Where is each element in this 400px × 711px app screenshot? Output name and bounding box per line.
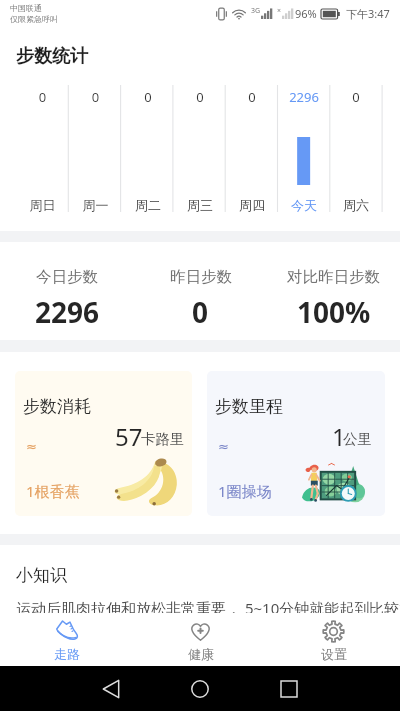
staticText: 运动后肌肉拉伸和放松非常重要， 5~10分钟就能起到比较好的效果。 <box>16 598 400 639</box>
staticText: 对比昨日步数 <box>287 267 380 287</box>
staticText: 周四 <box>226 197 278 213</box>
staticText: 2296 <box>35 293 100 331</box>
staticText: 周六 <box>330 197 382 213</box>
staticText: 57 <box>115 420 143 453</box>
staticText: 周一 <box>69 197 122 213</box>
staticText: 设置 <box>321 646 347 662</box>
staticText: ≈ <box>26 439 37 454</box>
staticText: 步数消耗 <box>23 396 91 417</box>
button[interactable]: 走路 <box>0 613 134 666</box>
staticText: 中国联通 <box>10 3 42 13</box>
staticText: 0 <box>174 88 226 106</box>
staticText: 3G <box>251 6 261 16</box>
button[interactable]: 昨日步数 <box>134 242 267 340</box>
button[interactable]: 步数消耗 <box>15 371 192 516</box>
staticText: 下午3:47 <box>346 6 390 21</box>
staticText: 2296 <box>278 88 330 106</box>
staticText: ≈ <box>218 439 229 454</box>
staticText: 96% <box>295 6 317 21</box>
staticText: 卡路里 <box>141 430 185 448</box>
staticText: 今天 <box>278 197 330 213</box>
staticText: 0 <box>69 88 122 106</box>
staticText: 0 <box>122 88 174 106</box>
staticText: 0 <box>330 88 382 106</box>
button[interactable]: Recents <box>267 667 311 711</box>
staticText: 公里 <box>343 430 372 448</box>
button[interactable]: 对比昨日步数 <box>267 242 400 340</box>
staticText: 走路 <box>54 646 80 662</box>
staticText: 周三 <box>174 197 226 213</box>
staticText: 0 <box>16 88 69 106</box>
staticText: 100% <box>297 293 371 331</box>
button[interactable]: Home <box>178 667 222 711</box>
button[interactable]: 设置 <box>267 613 400 666</box>
staticText: 1圈操场 <box>218 481 272 501</box>
button[interactable]: 今日步数 <box>0 242 134 340</box>
staticText: 周二 <box>122 197 174 213</box>
button[interactable]: 健康 <box>134 613 267 666</box>
staticText: 周日 <box>16 197 69 213</box>
staticText: 1 <box>332 420 346 453</box>
staticText: 0 <box>226 88 278 106</box>
staticText: 昨日步数 <box>170 267 232 287</box>
staticText: 健康 <box>188 646 214 662</box>
staticText: 1根香蕉 <box>26 481 80 501</box>
staticText: 仅限紧急呼叫 <box>10 14 58 24</box>
staticText: × <box>277 6 282 16</box>
staticText: 步数统计 <box>16 45 88 68</box>
staticText: 0 <box>192 293 209 331</box>
staticText: 小知识 <box>16 565 67 586</box>
button[interactable]: Back <box>89 667 133 711</box>
button[interactable]: 步数里程 <box>207 371 385 516</box>
staticText: 步数里程 <box>215 396 283 417</box>
staticText: 今日步数 <box>36 267 98 287</box>
